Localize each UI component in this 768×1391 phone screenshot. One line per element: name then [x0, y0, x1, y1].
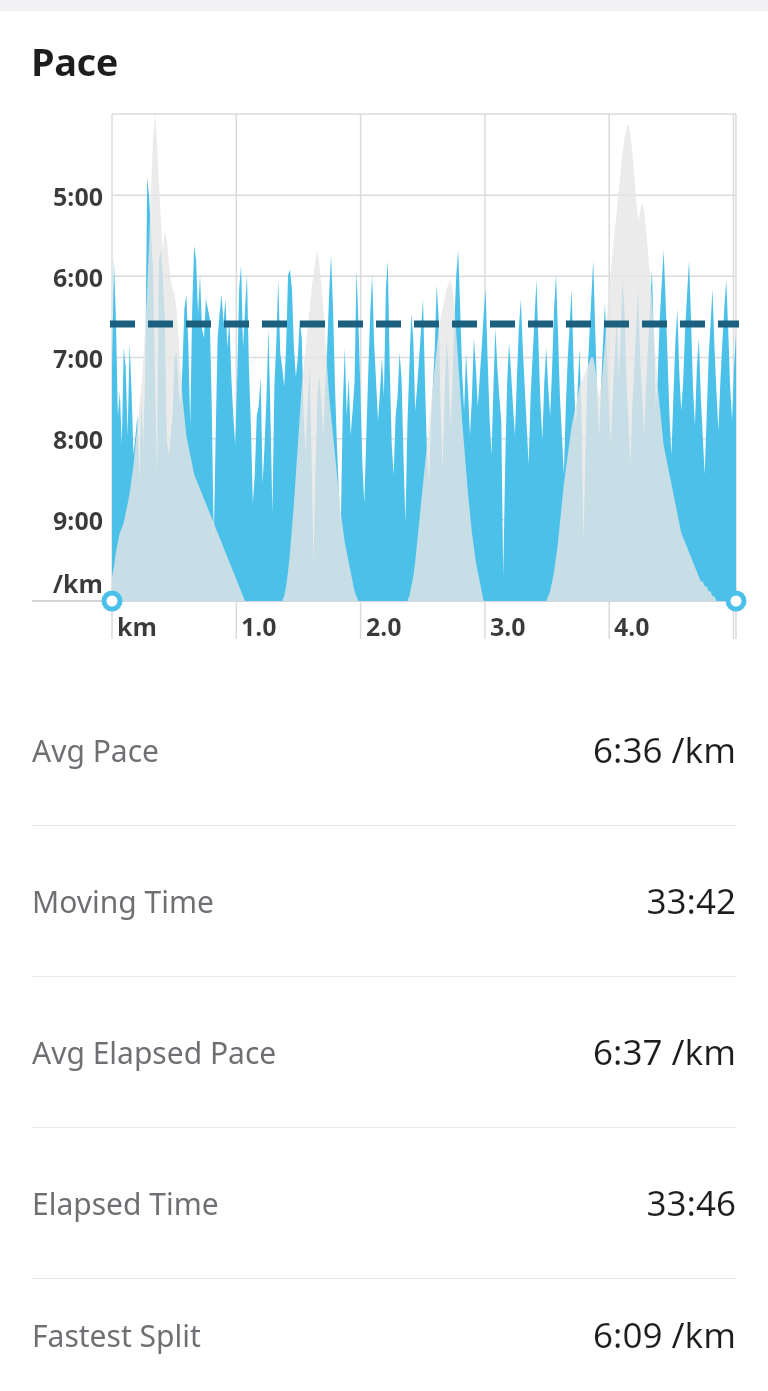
staticText: 5:00	[53, 179, 103, 213]
staticText: /km	[52, 566, 103, 600]
button[interactable]: Elapsed Time	[0, 1128, 768, 1278]
staticText: 8:00	[53, 422, 103, 456]
staticText: 6:09 /km	[593, 1311, 736, 1359]
staticText: Avg Pace	[32, 730, 159, 771]
staticText: 33:46	[646, 1179, 736, 1227]
button[interactable]: Moving Time	[0, 826, 768, 976]
staticText: 3.0	[490, 609, 526, 643]
staticText: Moving Time	[32, 881, 214, 922]
staticText: 9:00	[53, 503, 103, 537]
staticText: 2.0	[366, 609, 402, 643]
staticText: 4.0	[614, 609, 650, 643]
staticText: Fastest Split	[32, 1315, 201, 1356]
button[interactable]: Fastest Split	[0, 1279, 768, 1391]
staticText: 7:00	[53, 341, 103, 375]
button[interactable]: Avg Pace	[0, 675, 768, 825]
staticText: 6:00	[53, 260, 103, 294]
staticText: 6:37 /km	[593, 1028, 736, 1076]
staticText: Elapsed Time	[32, 1183, 219, 1224]
staticText: Pace	[31, 35, 119, 87]
staticText: km	[117, 609, 157, 643]
staticText: 6:36 /km	[593, 726, 736, 774]
staticText: 1.0	[241, 609, 277, 643]
staticText: Avg Elapsed Pace	[32, 1032, 277, 1073]
button[interactable]: Avg Elapsed Pace	[0, 977, 768, 1127]
staticText: 33:42	[646, 877, 736, 925]
